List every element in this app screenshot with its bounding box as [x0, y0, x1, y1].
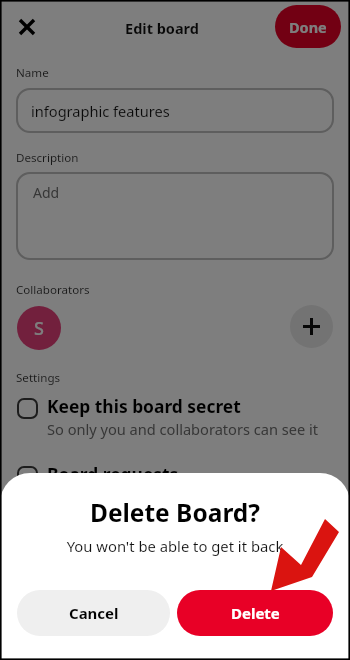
button[interactable]: Board requests [0, 462, 350, 507]
staticText: Keep this board secret [47, 394, 241, 418]
button[interactable]: Add collaborator [290, 305, 333, 348]
staticText: Cancel [69, 603, 119, 623]
staticText: Edit board [0, 18, 324, 38]
staticText: S [34, 316, 44, 341]
button[interactable]: Delete [177, 590, 333, 636]
staticText: So only you and collaborators can see it [47, 419, 319, 439]
staticText: Add [33, 183, 60, 202]
staticText: Let people ask to join [47, 487, 193, 507]
staticText: Delete [231, 603, 280, 623]
button[interactable]: Add [16, 172, 334, 260]
staticText: Name [16, 65, 49, 81]
button[interactable]: Keep this board secret [0, 394, 350, 439]
button[interactable]: Done [275, 5, 341, 48]
staticText: Board requests [47, 462, 179, 486]
staticText: Collaborators [16, 282, 90, 298]
staticText: Description [16, 150, 79, 166]
staticText: Settings [16, 370, 61, 386]
staticText: You won't be able to get it back [0, 536, 350, 556]
button[interactable]: infographic features [16, 88, 334, 133]
button[interactable]: Collaborator S [17, 306, 61, 350]
staticText: Done [289, 17, 327, 37]
button[interactable]: Close [10, 10, 44, 44]
staticText: infographic features [31, 101, 170, 121]
staticText: Delete Board? [0, 496, 350, 529]
button[interactable]: Cancel [17, 590, 170, 636]
